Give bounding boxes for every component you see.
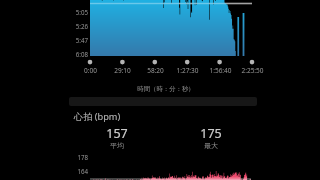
staticText: 178 xyxy=(77,153,88,161)
staticText: 58:20 xyxy=(147,66,164,75)
staticText: 時間（時：分：秒） xyxy=(137,85,195,93)
staticText: 心拍 (bpm) xyxy=(74,110,121,123)
staticText: 1:27:30 xyxy=(176,66,199,75)
staticText: 5:05 xyxy=(75,8,88,16)
staticText: 平均 xyxy=(110,141,124,150)
staticText: 175 xyxy=(200,125,222,142)
staticText: 164 xyxy=(77,167,88,175)
staticText: 2:25:50 xyxy=(241,66,264,75)
staticText: 1:56:40 xyxy=(209,66,232,75)
staticText: 最大 xyxy=(204,141,218,150)
staticText: 29:10 xyxy=(114,66,131,75)
staticText: 5:47 xyxy=(75,36,88,44)
staticText: 6:08 xyxy=(75,50,88,58)
staticText: 5:26 xyxy=(75,22,88,30)
staticText: 157 xyxy=(106,125,128,142)
staticText: 0:00 xyxy=(84,66,97,75)
